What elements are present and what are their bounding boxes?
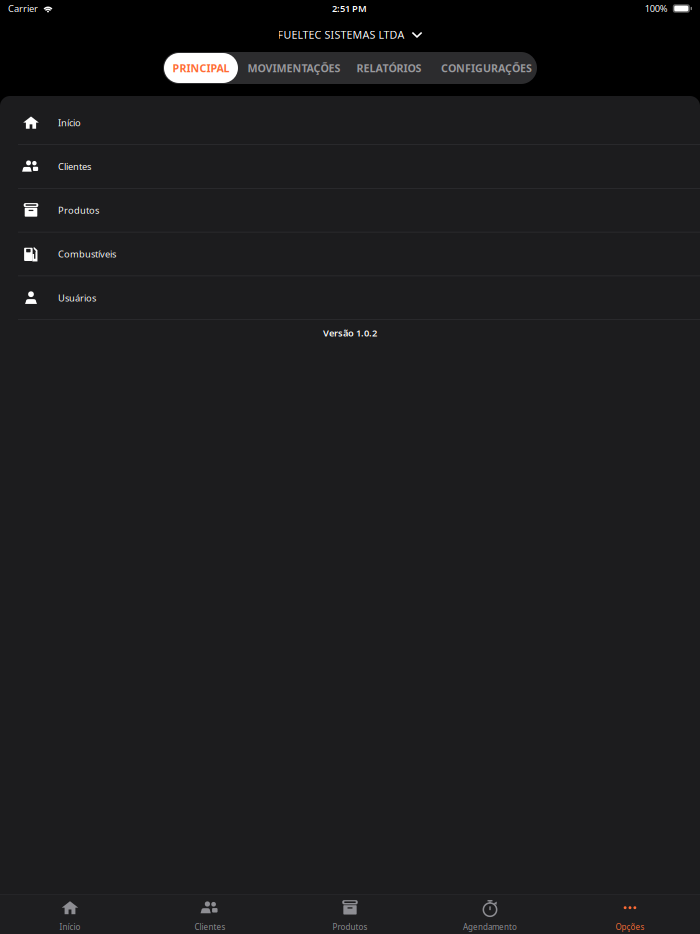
staticText: RELATÓRIOS xyxy=(356,61,421,75)
staticText: CONFIGURAÇÕES xyxy=(441,61,532,75)
staticText: FUELTEC SISTEMAS LTDA xyxy=(277,27,404,42)
button[interactable]: Clientes xyxy=(140,895,280,934)
staticText: Opções xyxy=(615,922,644,932)
button[interactable]: Produtos xyxy=(280,895,420,934)
staticText: MOVIMENTAÇÕES xyxy=(247,61,340,75)
staticText: Carrier xyxy=(8,2,38,15)
staticText: Produtos xyxy=(332,922,367,932)
staticText: 2:51 PM xyxy=(332,2,367,15)
staticText: Clientes xyxy=(194,922,225,932)
button[interactable]: Combustíveis xyxy=(0,232,700,276)
staticText: 100% xyxy=(645,2,668,15)
button[interactable]: Agendamento xyxy=(420,895,560,934)
staticText: PRINCIPAL xyxy=(172,61,229,75)
button[interactable]: PRINCIPAL xyxy=(164,53,247,83)
staticText: Produtos xyxy=(58,204,99,216)
button[interactable]: RELATÓRIOS xyxy=(341,53,437,83)
button[interactable]: CONFIGURAÇÕES xyxy=(437,53,536,83)
button[interactable]: Produtos xyxy=(0,189,700,232)
staticText: Usuários xyxy=(58,292,96,304)
staticText: Agendamento xyxy=(463,922,517,932)
staticText: Início xyxy=(58,116,81,129)
button[interactable]: Clientes xyxy=(0,145,700,189)
button[interactable]: Início xyxy=(0,895,140,934)
button[interactable]: FUELTEC SISTEMAS LTDA xyxy=(277,17,422,52)
button[interactable]: MOVIMENTAÇÕES xyxy=(247,53,341,83)
staticText: Combustíveis xyxy=(58,248,116,260)
button[interactable]: Usuários xyxy=(0,276,700,320)
button[interactable]: Início xyxy=(0,101,700,145)
staticText: Clientes xyxy=(58,160,91,173)
button[interactable]: Opções xyxy=(560,895,700,934)
staticText: Versão 1.0.2 xyxy=(323,327,377,339)
staticText: Início xyxy=(59,922,80,932)
